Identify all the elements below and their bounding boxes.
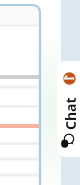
staticText: Chat [61,97,79,130]
button[interactable]: Chat [57,61,80,157]
